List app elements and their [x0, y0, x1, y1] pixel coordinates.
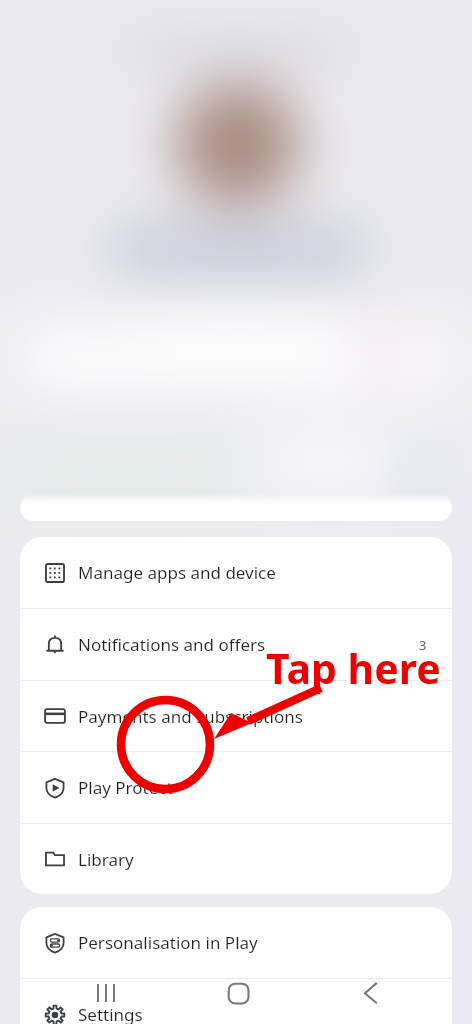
staticText: Personalisation in Play [78, 931, 258, 954]
staticText: Payments and subscriptions [78, 705, 303, 728]
staticText: 3 [419, 636, 427, 654]
staticText: Tap here [266, 640, 441, 696]
staticText: Manage apps and device [78, 561, 276, 584]
button[interactable]: Payments and subscriptions [20, 681, 452, 751]
staticText: Play Protect [78, 776, 173, 799]
staticText: Notifications and offers [78, 633, 266, 656]
button[interactable]: Manage apps and device [20, 537, 452, 608]
button[interactable]: Library [20, 824, 452, 894]
button[interactable]: Personalisation in Play [20, 907, 452, 978]
button[interactable]: Play Protect [20, 752, 452, 823]
button[interactable]: Notifications and offers [20, 609, 452, 680]
button[interactable]: Settings [20, 979, 452, 1024]
staticText: Settings [78, 1003, 143, 1024]
staticText: Library [78, 848, 134, 871]
